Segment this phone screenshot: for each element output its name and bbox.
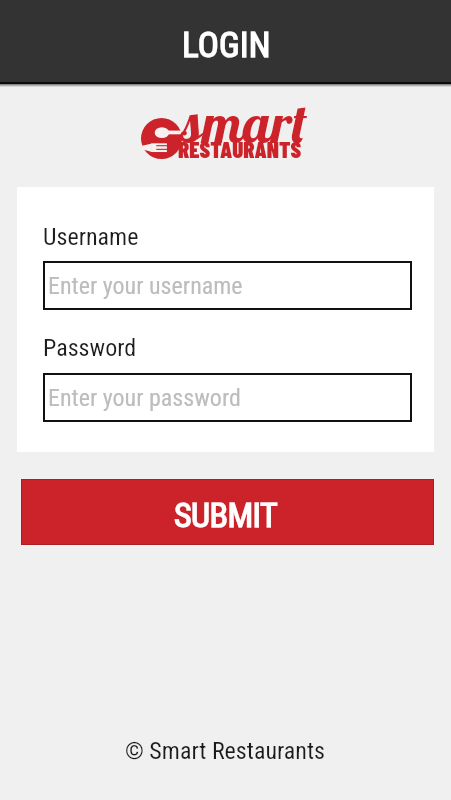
- staticText: Username: [43, 223, 139, 251]
- staticText: Enter your username: [48, 272, 243, 300]
- button[interactable]: Enter your password: [43, 373, 412, 422]
- staticText: © Smart Restaurants: [125, 737, 326, 765]
- other: Smart Restaurants logo: [131, 108, 192, 169]
- staticText: Password: [43, 334, 137, 362]
- button[interactable]: LOGIN: [0, 0, 451, 83]
- staticText: RESTAURANTS: [178, 135, 302, 163]
- staticText: smart: [181, 89, 306, 157]
- staticText: SUBMIT: [174, 495, 278, 535]
- staticText: LOGIN: [182, 25, 271, 66]
- staticText: Enter your password: [48, 384, 241, 412]
- button[interactable]: SUBMIT: [21, 479, 434, 545]
- button[interactable]: Enter your username: [43, 261, 412, 310]
